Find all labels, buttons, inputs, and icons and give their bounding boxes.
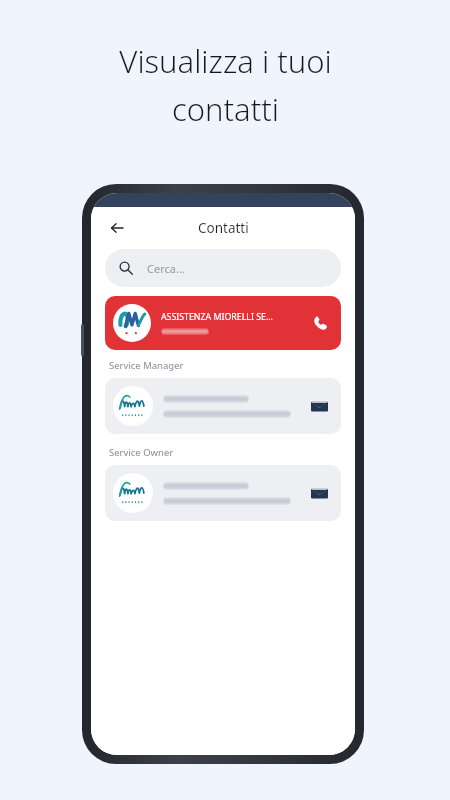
staticText: Service Owner	[109, 446, 174, 459]
staticText: Service Manager	[109, 359, 184, 372]
button[interactable]: Email	[303, 477, 335, 509]
button[interactable]: Email	[105, 378, 341, 434]
staticText: Cerca...	[147, 261, 185, 276]
button[interactable]: Call	[303, 306, 337, 340]
staticText: Visualizza i tuoi	[119, 40, 332, 82]
staticText: contatti	[172, 88, 279, 130]
button[interactable]: ASSISTENZA MIORELLI SE...	[105, 296, 341, 350]
button[interactable]: Cerca...	[105, 249, 341, 287]
button[interactable]: Back	[103, 214, 131, 242]
staticText: Contatti	[198, 219, 249, 237]
button[interactable]: Email	[303, 390, 335, 422]
button[interactable]: Email	[105, 465, 341, 521]
staticText: ASSISTENZA MIORELLI SE...	[161, 311, 273, 323]
